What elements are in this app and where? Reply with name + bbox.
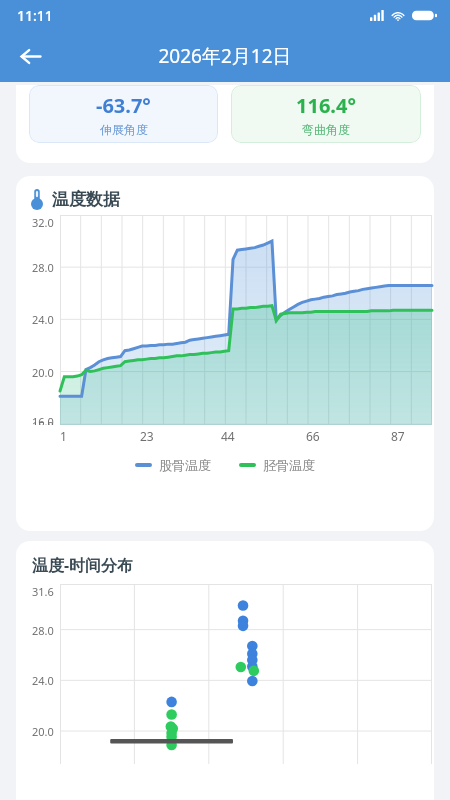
staticText: 1 <box>60 428 67 444</box>
staticText: 20.0 <box>32 724 54 739</box>
staticText: 24.0 <box>32 312 54 327</box>
staticText: 15.9 <box>32 418 54 425</box>
button[interactable]: 股骨温度 <box>133 455 213 475</box>
button[interactable]: 116.4° <box>231 85 421 143</box>
staticText: 伸展角度 <box>100 122 148 137</box>
staticText: 44 <box>221 428 235 444</box>
button[interactable]: Back <box>7 33 53 79</box>
staticText: 116.4° <box>296 92 356 119</box>
staticText: 弯曲角度 <box>302 122 350 137</box>
staticText: 32.0 <box>32 215 54 230</box>
staticText: 2026年2月12日 <box>158 43 292 69</box>
staticText: 温度数据 <box>52 189 120 210</box>
button[interactable]: 胫骨温度 <box>237 455 317 475</box>
staticText: 66 <box>306 428 320 444</box>
staticText: 23 <box>140 428 154 444</box>
staticText: 28.0 <box>32 260 54 275</box>
staticText: 20.0 <box>32 365 54 380</box>
staticText: 16.0 <box>32 414 54 425</box>
button[interactable]: -63.7° <box>29 85 218 143</box>
staticText: 24.0 <box>32 673 54 688</box>
staticText: 28.0 <box>32 623 54 638</box>
staticText: 11:11 <box>17 6 53 25</box>
staticText: 87 <box>391 428 405 444</box>
staticText: 股骨温度 <box>159 457 211 473</box>
staticText: 胫骨温度 <box>263 457 315 473</box>
staticText: 温度-时间分布 <box>32 554 134 576</box>
staticText: 31.6 <box>32 584 54 599</box>
staticText: -63.7° <box>96 92 151 119</box>
